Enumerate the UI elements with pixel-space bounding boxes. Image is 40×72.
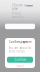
staticText: Confirm	[14, 58, 25, 61]
staticText: Cancel	[15, 64, 24, 68]
button[interactable]: Confirm	[7, 57, 33, 63]
staticText: billed monthly	[12, 12, 23, 19]
staticText: Choose a plan	[12, 3, 25, 11]
staticText: Confirm payment	[8, 40, 31, 44]
staticText: You are about to send funds	[8, 46, 31, 53]
button[interactable]: Cancel	[7, 64, 33, 68]
